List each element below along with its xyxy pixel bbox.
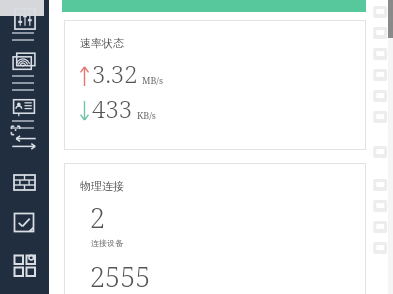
staticText: 2 bbox=[90, 199, 106, 236]
button[interactable]: Port forwarding bbox=[10, 124, 38, 152]
staticText: 物理连接 bbox=[80, 179, 124, 193]
staticText: MB/s bbox=[142, 74, 163, 86]
staticText: 2555 bbox=[90, 258, 151, 294]
button[interactable]: Tasks bbox=[12, 210, 37, 235]
button[interactable]: 速率状态 bbox=[64, 20, 366, 150]
staticText: 433 bbox=[92, 92, 133, 125]
staticText: KB/s bbox=[137, 109, 156, 121]
staticText: 3.32 bbox=[92, 57, 138, 90]
button[interactable]: Wireless bbox=[11, 48, 37, 74]
staticText: 连接设备 bbox=[91, 238, 123, 248]
button[interactable]: Settings sliders bbox=[13, 7, 37, 31]
button[interactable]: Apps bbox=[12, 250, 37, 275]
button[interactable]: Devices bbox=[11, 94, 37, 120]
staticText: 速率状态 bbox=[80, 36, 124, 50]
button[interactable]: 物理连接 bbox=[64, 163, 366, 294]
button[interactable]: Firewall bbox=[12, 170, 37, 195]
